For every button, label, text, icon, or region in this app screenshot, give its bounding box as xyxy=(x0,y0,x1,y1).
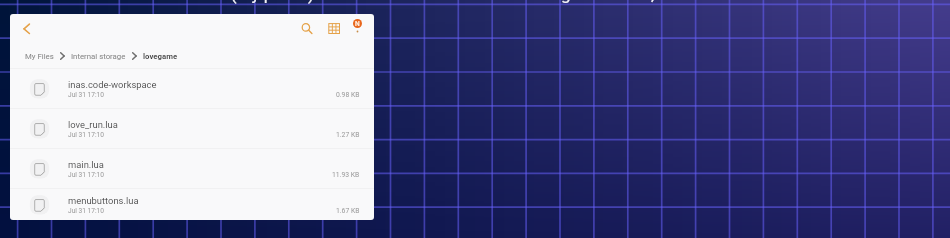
staticText: love_run.lua xyxy=(68,119,118,130)
staticText: main.lua xyxy=(68,159,104,170)
staticText: 1.67 KB xyxy=(336,207,360,215)
staticText: My Files xyxy=(25,52,54,61)
staticText: Jul 31 17:10 xyxy=(68,91,104,99)
staticText: menubuttons.lua xyxy=(68,195,139,206)
staticText: 11.93 KB xyxy=(332,171,360,179)
staticText: LOVE (my part 3) - all lua code files in… xyxy=(186,0,691,4)
staticText: Jul 31 17:10 xyxy=(68,171,104,179)
button[interactable]: Back xyxy=(15,14,38,44)
button[interactable]: Search xyxy=(293,14,319,44)
button[interactable]: menubuttons.lua xyxy=(10,189,374,220)
staticText: 1.27 KB xyxy=(336,131,360,139)
staticText: Internal storage xyxy=(71,52,126,61)
staticText: lovegame xyxy=(143,52,178,61)
button[interactable]: love_run.lua xyxy=(10,109,374,148)
button[interactable]: Grid view xyxy=(321,14,347,44)
button[interactable]: inas.code-workspace xyxy=(10,69,374,108)
staticText: Jul 31 17:10 xyxy=(68,131,104,139)
staticText: 0.98 KB xyxy=(336,91,360,99)
button[interactable]: Notifications xyxy=(346,14,369,44)
staticText: Jul 31 17:10 xyxy=(68,207,104,215)
staticText: N xyxy=(355,20,360,28)
button[interactable]: main.lua xyxy=(10,149,374,188)
staticText: inas.code-workspace xyxy=(68,79,157,90)
